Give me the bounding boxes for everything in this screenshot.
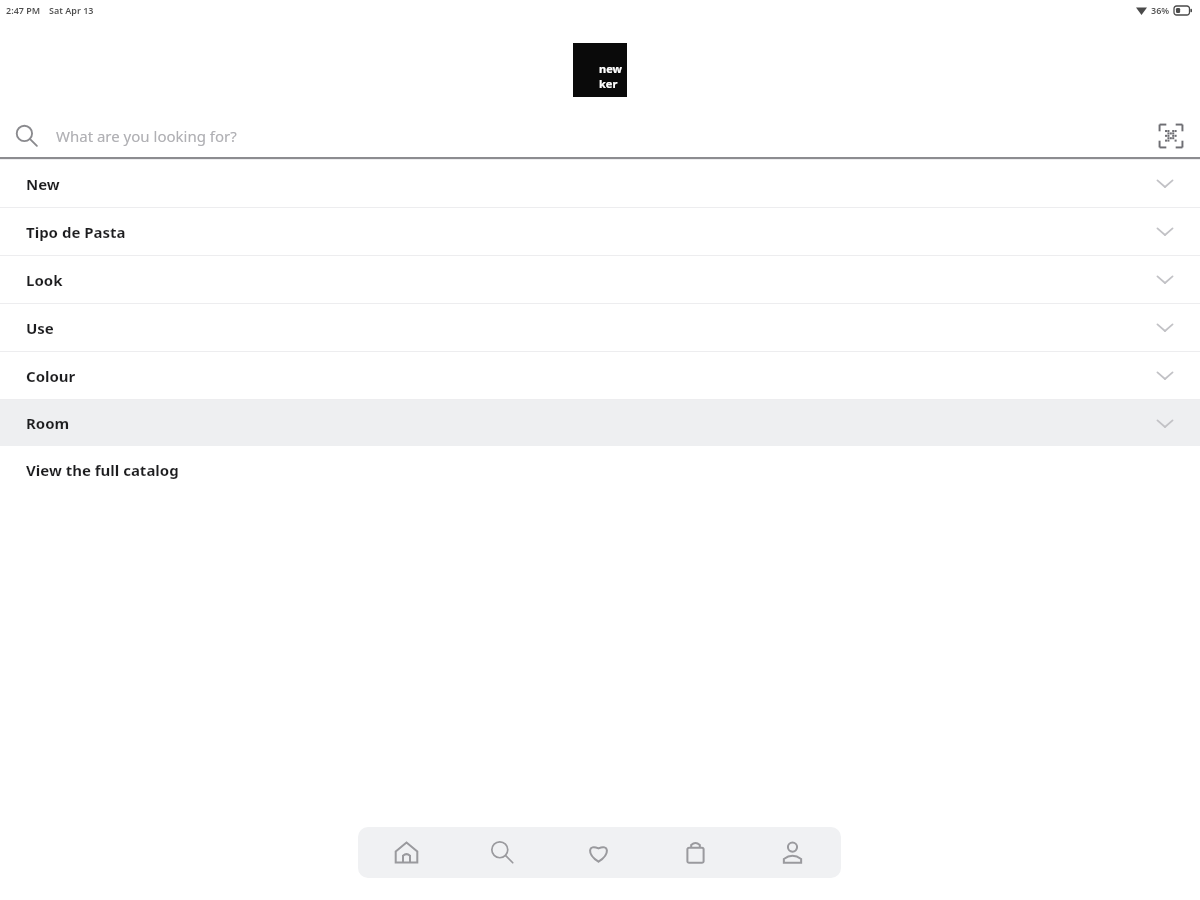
- staticText: 36%: [1151, 4, 1170, 16]
- staticText: new: [599, 61, 622, 76]
- staticText: New: [26, 174, 60, 194]
- staticText: ker: [599, 76, 618, 91]
- button[interactable]: Favourites: [550, 827, 647, 878]
- staticText: View the full catalog: [26, 460, 179, 480]
- button[interactable]: Tipo de Pasta: [0, 208, 1200, 255]
- button[interactable]: Account: [744, 827, 841, 878]
- staticText: What are you looking for?: [56, 126, 237, 146]
- staticText: Look: [26, 270, 63, 290]
- button[interactable]: Scan code: [1154, 119, 1188, 153]
- button[interactable]: Colour: [0, 352, 1200, 399]
- button[interactable]: Search: [454, 827, 550, 878]
- staticText: Tipo de Pasta: [26, 222, 126, 242]
- button[interactable]: Use: [0, 304, 1200, 351]
- staticText: Colour: [26, 366, 76, 386]
- button[interactable]: What are you looking for?: [0, 115, 1200, 157]
- staticText: Sat Apr 13: [49, 4, 94, 16]
- staticText: Use: [26, 318, 54, 338]
- button[interactable]: Room: [0, 400, 1200, 446]
- staticText: Room: [26, 413, 70, 433]
- button[interactable]: Look: [0, 256, 1200, 303]
- staticText: 2:47 PM: [6, 4, 41, 16]
- button[interactable]: Bag: [647, 827, 744, 878]
- button[interactable]: Home: [358, 827, 454, 878]
- button[interactable]: View the full catalog: [0, 446, 1200, 494]
- button[interactable]: New: [0, 160, 1200, 207]
- button[interactable]: Newker logo: [573, 43, 627, 97]
